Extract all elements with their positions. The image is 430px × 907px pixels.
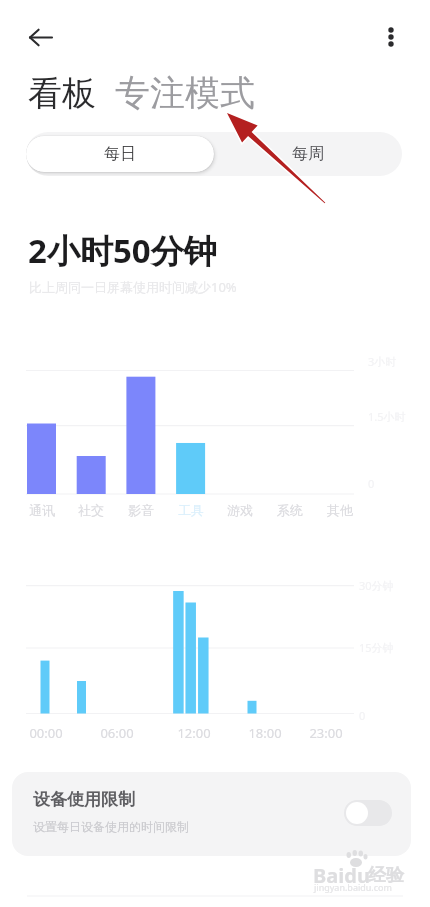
- staticText: 每日: [104, 144, 136, 164]
- staticText: 设备使用限制: [33, 789, 135, 810]
- staticText: 工具: [171, 502, 211, 518]
- staticText: 3小时: [368, 354, 397, 369]
- button[interactable]: More options: [369, 15, 413, 59]
- staticText: 00:00: [20, 724, 72, 742]
- staticText: 比上周同一日屏幕使用时间减少10%: [29, 278, 237, 296]
- staticText: 每周: [292, 144, 324, 164]
- staticText: 游戏: [220, 502, 260, 518]
- staticText: 看板: [28, 72, 96, 115]
- staticText: 影音: [121, 502, 161, 518]
- staticText: 23:00: [300, 724, 352, 742]
- button[interactable]: 每周: [214, 132, 402, 176]
- staticText: 经验: [368, 864, 404, 887]
- staticText: 专注模式: [115, 71, 255, 115]
- staticText: 设置每日设备使用的时间限制: [33, 819, 189, 834]
- button[interactable]: Back: [19, 16, 62, 59]
- staticText: 其他: [320, 502, 360, 518]
- staticText: 系统: [270, 502, 310, 518]
- button[interactable]: Toggle device usage limit: [344, 800, 392, 826]
- staticText: 通讯: [22, 502, 62, 518]
- staticText: 12:00: [168, 724, 220, 742]
- staticText: jingyan.baidu.com: [314, 881, 392, 893]
- staticText: 0: [368, 476, 375, 491]
- staticText: 06:00: [91, 724, 143, 742]
- staticText: 15分钟: [359, 640, 394, 655]
- staticText: 0: [359, 708, 366, 723]
- staticText: 社交: [71, 502, 111, 518]
- staticText: Baidu: [313, 862, 370, 889]
- button[interactable]: 设备使用限制: [12, 772, 411, 856]
- staticText: 1.5小时: [368, 409, 406, 424]
- staticText: 30分钟: [359, 578, 394, 593]
- button[interactable]: 每日: [26, 136, 214, 172]
- staticText: 2小时50分钟: [28, 228, 217, 273]
- staticText: 18:00: [239, 724, 291, 742]
